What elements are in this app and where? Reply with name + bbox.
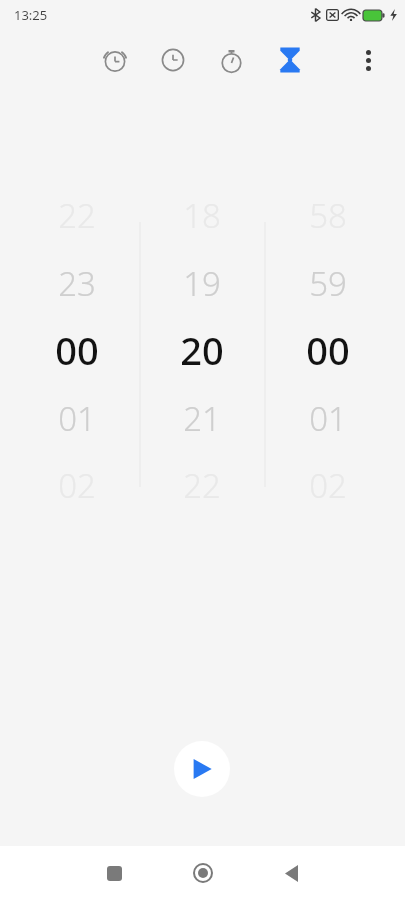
- button[interactable]: 59: [278, 249, 378, 317]
- staticText: 18: [183, 193, 221, 238]
- button[interactable]: More options: [346, 38, 390, 82]
- button[interactable]: 00: [278, 316, 378, 384]
- button[interactable]: Back: [269, 851, 313, 895]
- button[interactable]: World clock: [151, 38, 195, 82]
- staticText: 23: [58, 261, 96, 306]
- staticText: 58: [309, 193, 347, 238]
- staticText: 00: [55, 324, 99, 376]
- button[interactable]: 01: [27, 384, 127, 452]
- staticText: 01: [58, 396, 96, 441]
- button[interactable]: 19: [152, 249, 252, 317]
- staticText: 01: [309, 396, 347, 441]
- button[interactable]: 21: [152, 384, 252, 452]
- button[interactable]: 00: [27, 316, 127, 384]
- button[interactable]: 01: [278, 384, 378, 452]
- staticText: 21: [183, 396, 221, 441]
- staticText: 13:25: [14, 6, 48, 24]
- staticText: 00: [306, 324, 350, 376]
- button[interactable]: Start timer: [174, 741, 230, 797]
- button[interactable]: Alarm: [93, 38, 137, 82]
- staticText: 22: [58, 193, 96, 238]
- staticText: 22: [183, 463, 221, 508]
- button[interactable]: 20: [152, 316, 252, 384]
- button[interactable]: Home: [181, 851, 225, 895]
- button[interactable]: Recent apps: [92, 851, 136, 895]
- button[interactable]: Stopwatch: [209, 38, 253, 82]
- staticText: 20: [180, 324, 224, 376]
- staticText: 19: [183, 261, 221, 306]
- button[interactable]: Timer: [268, 38, 312, 82]
- staticText: 02: [58, 463, 96, 508]
- staticText: 02: [309, 463, 347, 508]
- staticText: 59: [309, 261, 347, 306]
- button[interactable]: 23: [27, 249, 127, 317]
